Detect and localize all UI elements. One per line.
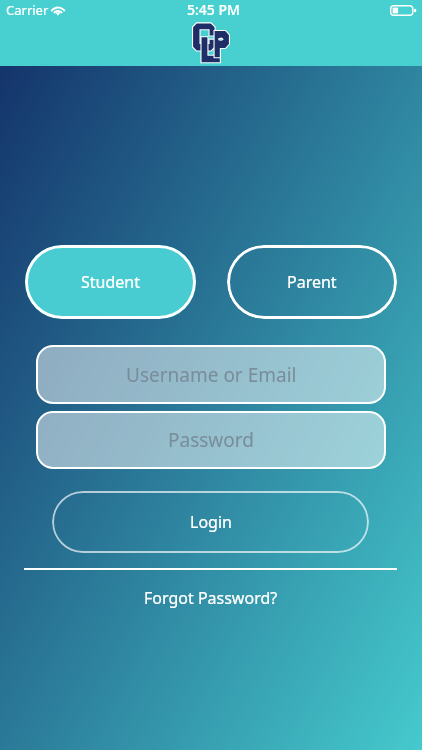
staticText: Password xyxy=(168,427,254,453)
staticText: Username or Email xyxy=(126,362,297,388)
staticText: Carrier xyxy=(6,1,49,19)
staticText: Parent xyxy=(287,271,337,293)
staticText: Forgot Password? xyxy=(144,587,278,609)
other: Wi-Fi signal xyxy=(50,4,66,16)
button[interactable]: Login xyxy=(52,491,369,553)
button[interactable]: Parent xyxy=(227,245,397,319)
staticText: 5:45 PM xyxy=(187,0,240,19)
button[interactable]: Password xyxy=(36,411,386,469)
button[interactable]: Forgot Password? xyxy=(131,583,291,613)
button[interactable]: Username or Email xyxy=(36,345,386,404)
staticText: Student xyxy=(81,271,140,293)
button[interactable]: Student xyxy=(25,245,196,319)
staticText: Login xyxy=(190,511,232,533)
